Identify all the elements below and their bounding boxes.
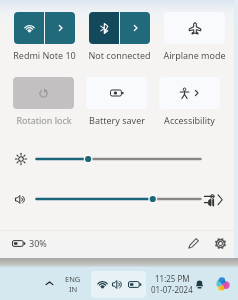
button[interactable]: Airplane mode — [164, 12, 225, 44]
button[interactable]: Edit quick settings — [181, 231, 205, 255]
button[interactable]: Show hidden icons — [41, 267, 58, 300]
staticText: Battery saver — [89, 114, 145, 126]
staticText: Airplane mode — [163, 49, 226, 61]
button[interactable]: Not connected — [89, 12, 119, 44]
staticText: Rotation lock — [16, 114, 72, 126]
button[interactable]: Accessibility — [159, 77, 220, 109]
button[interactable]: Date and time — [150, 267, 194, 300]
staticText: IN — [69, 284, 78, 294]
button[interactable]: Battery saver — [86, 77, 147, 109]
button[interactable]: Brightness — [35, 150, 202, 168]
staticText: 30% — [29, 237, 47, 249]
staticText: Not connected — [88, 49, 151, 61]
button[interactable]: Network sound and battery — [91, 271, 146, 298]
staticText: Accessibility — [164, 114, 215, 126]
button[interactable]: Volume mixer — [204, 193, 223, 206]
button[interactable]: Volume — [35, 190, 202, 208]
button[interactable]: Language ENG IN — [62, 267, 84, 300]
button[interactable]: Copilot — [212, 267, 234, 300]
staticText: 11:25 PM — [155, 273, 190, 284]
staticText: 01-07-2024 — [151, 284, 193, 295]
button[interactable]: Redmi Note 10 — [14, 12, 44, 44]
staticText: ENG — [65, 274, 81, 284]
button[interactable]: Settings — [208, 231, 232, 255]
button[interactable]: Rotation lock — [13, 77, 74, 109]
button[interactable]: Battery 30 percent — [8, 231, 51, 255]
button[interactable]: Not connected options — [120, 12, 150, 44]
staticText: Redmi Note 10 — [13, 49, 76, 61]
button[interactable]: Redmi Note 10 options — [45, 12, 75, 44]
button[interactable]: Notifications — [191, 267, 208, 300]
